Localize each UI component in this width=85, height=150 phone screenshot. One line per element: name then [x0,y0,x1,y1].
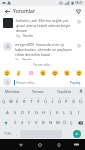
staticText: A [6,110,9,116]
button[interactable]: X [19,117,26,128]
button[interactable]: L [61,106,68,117]
button[interactable]: . [62,129,69,138]
button[interactable]: C [26,117,33,128]
button[interactable]: 3 [14,95,21,106]
button[interactable]: Emoji [39,69,46,76]
button[interactable]: , [13,129,20,138]
button[interactable]: Beğen [75,18,82,25]
staticText: 8 [52,96,54,99]
staticText: Yorum ekle... [16,80,37,85]
button[interactable]: Sesle yaz [77,87,85,95]
staticText: K [56,110,59,116]
button[interactable]: Yanıtla [23,34,33,38]
staticText: Yorum ekle... [33,63,53,67]
staticText: Tamam [32,89,44,94]
button[interactable]: Merhaba [0,87,25,95]
button[interactable]: 0 [63,95,70,106]
staticText: E [16,99,19,105]
staticText: O [58,99,62,105]
button[interactable]: J [47,106,54,117]
staticText: Z [14,120,17,126]
staticText: 5 [31,96,33,99]
staticText: R [23,99,26,105]
button[interactable]: 9 [56,95,63,106]
staticText: Teşekkür [57,89,72,94]
button[interactable]: Ü [77,95,84,106]
button[interactable]: Z [11,117,19,128]
button[interactable]: Beğen [75,42,82,49]
button[interactable]: I [75,106,82,117]
staticText: Yorumlar [13,8,36,15]
button[interactable]: S [11,106,19,117]
staticText: B [42,120,45,126]
button[interactable]: 5 [28,95,35,106]
staticText: D [21,110,25,116]
button[interactable]: 7 [42,95,49,106]
button[interactable]: 6 [35,95,42,106]
button[interactable]: Emoji [3,69,10,76]
button[interactable]: V [33,117,40,128]
staticText: J [50,110,52,116]
button[interactable]: 2 [7,95,14,106]
button[interactable]: ?123 [1,129,13,138]
staticText: G [35,110,39,116]
button[interactable]: H [40,106,47,117]
staticText: Ü [79,99,83,105]
button[interactable]: B [40,117,47,128]
button[interactable]: A [3,106,11,117]
button[interactable]: Ana ekran [30,139,49,150]
staticText: P [65,99,68,105]
button[interactable]: Tamam [25,87,51,95]
staticText: M [56,120,60,126]
button[interactable]: 4 [21,95,28,106]
button[interactable]: Emoji [27,69,34,76]
button[interactable]: Geri [11,139,30,150]
button[interactable]: Yanıtla [22,58,32,60]
button[interactable]: Ş [68,106,75,117]
button[interactable]: F [26,106,33,117]
button[interactable]: Ö [61,117,68,128]
staticText: L [63,110,66,116]
staticText: W [9,99,13,105]
button[interactable]: Gönder [74,7,82,15]
button[interactable]: kullanici_adi Ellerine sağlık çok güzel … [0,16,85,40]
button[interactable]: Ğ [70,95,77,106]
button[interactable]: M [54,117,61,128]
button[interactable]: Klavyeyi kapat [68,139,85,150]
button[interactable]: G [33,106,40,117]
button[interactable]: Son uygulamalar [49,139,68,150]
staticText: Yanıtla [22,58,32,60]
staticText: Ç [70,120,73,126]
staticText: Yanıtla [23,34,33,38]
button[interactable]: Paylaş [69,80,82,85]
button[interactable]: N [47,117,54,128]
staticText: , [16,131,18,136]
button[interactable]: Emoji [15,69,22,76]
staticText: S [14,110,17,116]
staticText: Merhaba [5,89,20,94]
button[interactable]: Emoji [63,69,70,76]
staticText: T [30,99,33,105]
button[interactable]: 1 [1,95,7,106]
button[interactable]: K [54,106,61,117]
button[interactable]: Teşekkür [51,87,77,95]
staticText: 7 [45,96,47,99]
button[interactable]: Yorum ekle... [0,77,85,87]
staticText: H [42,110,46,116]
staticText: 0 [66,96,68,99]
button[interactable]: D [19,106,26,117]
button[interactable]: Geri [3,7,11,15]
button[interactable]: Gönder [73,130,81,138]
button[interactable]: Emoji [51,69,58,76]
staticText: Q [2,99,6,105]
button[interactable]: Shift [0,117,11,128]
button[interactable]: mrtgml009 Sonunda vi en iyi haberlerdan,… [0,40,85,62]
staticText: Ğ [72,99,76,105]
button[interactable]: Emoji [75,69,82,76]
button[interactable]: Ç [68,117,75,128]
button[interactable]: Sil [75,117,85,128]
staticText: 3 [17,96,19,99]
button[interactable]: 8 [49,95,56,106]
staticText: N [49,120,53,126]
